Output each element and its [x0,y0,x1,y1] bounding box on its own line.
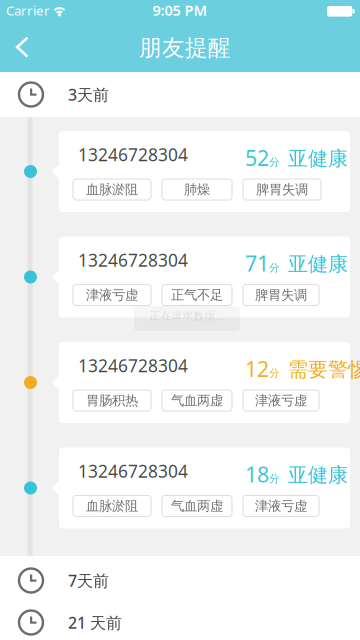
staticText: 肺燥 [184,181,210,198]
staticText: 津液亏虚 [86,287,138,303]
button[interactable]: 21 天前 [0,600,360,640]
staticText: 胃肠积热 [86,392,138,409]
staticText: 12 [245,354,269,383]
staticText: 朋友提醒 [139,34,231,62]
staticText: 13246728304 [78,354,188,377]
staticText: 7天前 [68,570,109,591]
button[interactable]: 13246728304 [59,447,350,528]
staticText: 分 [269,367,280,380]
staticText: 脾胃失调 [255,287,307,303]
staticText: 正在请求数据... [149,308,224,323]
staticText: 13246728304 [78,143,188,166]
staticText: 18 [245,460,269,488]
staticText: 津液亏虚 [255,392,307,409]
staticText: 气血两虚 [171,392,223,409]
staticText: 分 [269,261,280,274]
button[interactable]: 7天前 [0,558,360,603]
staticText: 分 [269,472,280,485]
staticText: 13246728304 [78,248,188,271]
staticText: Carrier [6,1,50,19]
staticText: 气血两虚 [171,498,223,514]
staticText: 血脉淤阻 [86,498,138,514]
staticText: 需要警惕 [288,357,360,382]
staticText: 血脉淤阻 [86,181,138,198]
staticText: 71 [245,249,269,277]
staticText: 13246728304 [78,459,188,482]
button[interactable]: 13246728304 [59,236,350,317]
staticText: 分 [269,156,280,169]
staticText: 亚健康 [288,463,348,487]
staticText: 亚健康 [288,252,348,276]
staticText: 脾胃失调 [256,181,308,198]
staticText: 亚健康 [288,146,348,171]
button[interactable]: 13246728304 [59,131,350,212]
staticText: 正气不足 [171,287,223,303]
button[interactable]: 3天前 [0,72,360,117]
staticText: 津液亏虚 [255,498,307,514]
staticText: 3天前 [68,84,109,105]
staticText: 52 [245,143,269,172]
button[interactable]: Back [0,25,44,69]
staticText: 21 天前 [68,612,122,633]
staticText: 9:05 PM [152,0,207,20]
button[interactable]: 13246728304 [59,342,350,423]
